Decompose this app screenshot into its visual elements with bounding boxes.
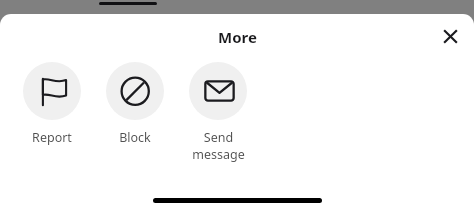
button[interactable]: Report — [23, 62, 81, 146]
button[interactable]: Close — [433, 19, 467, 53]
staticText: Block — [119, 129, 151, 146]
button[interactable]: Send message — [189, 62, 247, 163]
staticText: Report — [32, 129, 72, 146]
button[interactable]: Block — [106, 62, 164, 146]
staticText: More — [218, 27, 257, 47]
staticText: Send message — [192, 129, 245, 163]
